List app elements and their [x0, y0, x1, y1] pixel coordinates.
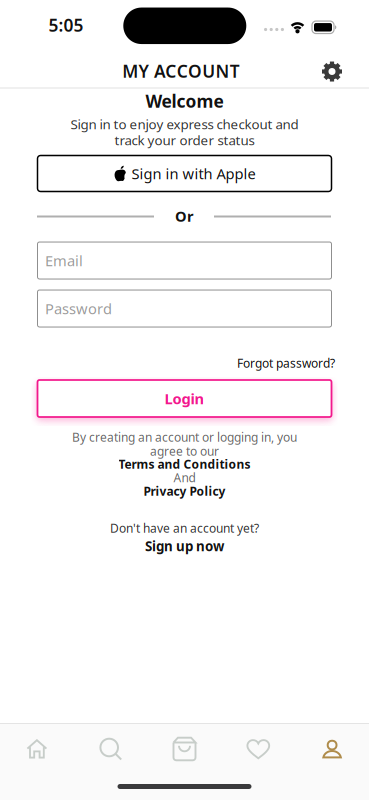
button[interactable]: Terms and Conditions	[118, 456, 250, 472]
staticText: agree to our	[150, 443, 219, 459]
button[interactable]: Wishlist	[246, 738, 271, 759]
staticText: By creating an account or logging in, yo…	[72, 429, 297, 445]
staticText: 5:05	[48, 13, 83, 36]
button[interactable]: Login	[37, 380, 331, 417]
staticText: Sign in with Apple	[131, 164, 255, 183]
staticText: Welcome	[145, 89, 223, 112]
button[interactable]: Sign up now	[145, 537, 224, 555]
button[interactable]: Home	[25, 738, 48, 760]
button[interactable]: Forgot password?	[237, 355, 335, 371]
staticText: track your order status	[114, 131, 254, 149]
staticText: Sign in to enjoy express checkout and	[70, 115, 298, 133]
button[interactable]: Privacy Policy	[143, 483, 225, 499]
staticText: Don't have an account yet?	[110, 520, 259, 536]
staticText: Password	[45, 299, 112, 318]
staticText: And	[173, 469, 195, 485]
button[interactable]: Shopping Bag	[172, 736, 196, 761]
staticText: Terms and Conditions	[118, 456, 250, 472]
button[interactable]: Sign in with Apple	[37, 155, 331, 191]
staticText: Login	[164, 389, 204, 408]
button[interactable]: Settings	[321, 61, 342, 82]
staticText: Forgot password?	[237, 355, 335, 371]
staticText: Privacy Policy	[143, 483, 225, 499]
staticText: Sign up now	[145, 537, 224, 555]
staticText: Or	[175, 206, 194, 226]
staticText: Email	[45, 251, 83, 270]
staticText: MY ACCOUNT	[122, 59, 240, 82]
button[interactable]: My Account	[322, 739, 342, 759]
button[interactable]: Search	[99, 737, 122, 760]
